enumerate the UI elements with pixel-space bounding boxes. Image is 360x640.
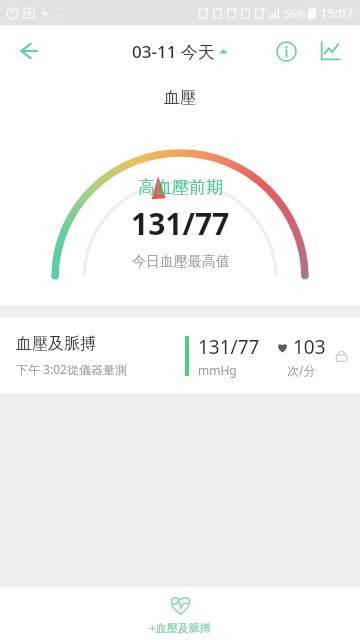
staticText: 血壓及脈搏 (16, 334, 96, 354)
staticText: mmHg (198, 362, 237, 378)
button[interactable]: Back (8, 31, 48, 71)
button[interactable]: 血壓及脈搏 (0, 318, 360, 393)
staticText: 131/77 (198, 334, 260, 360)
staticText: 次/分 (287, 362, 316, 378)
staticText: 15:07 (320, 4, 354, 22)
staticText: +血壓及脈搏 (149, 620, 211, 635)
staticText: 56% (284, 6, 306, 21)
button[interactable]: Info (266, 31, 306, 71)
staticText: 今日血壓最高值 (132, 253, 230, 271)
staticText: 血壓 (164, 88, 196, 108)
button[interactable]: +血壓及脈搏 (149, 593, 211, 635)
staticText: 103 (293, 334, 326, 360)
staticText: 下午 3:02從儀器量測 (16, 361, 127, 377)
staticText: 131/77 (131, 203, 230, 244)
button[interactable]: 03-11 今天 (132, 40, 228, 63)
button[interactable]: Chart (310, 31, 350, 71)
staticText: 高血壓前期 (138, 177, 223, 198)
staticText: ... (54, 6, 63, 20)
staticText: 03-11 今天 (132, 40, 215, 63)
other: Private (335, 349, 348, 362)
